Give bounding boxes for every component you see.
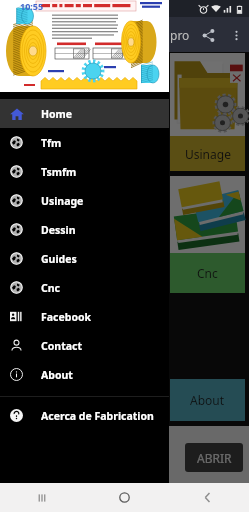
button[interactable]: Tsmfm (0, 157, 169, 186)
button[interactable]: More options (223, 22, 249, 48)
button[interactable]: Home (83, 483, 166, 512)
button[interactable]: Share (193, 20, 223, 50)
button[interactable]: Tfm (0, 128, 169, 157)
button[interactable]: Dessin (0, 215, 169, 244)
staticText: About (190, 392, 225, 408)
staticText: Acerca de Fabrication (41, 409, 154, 423)
staticText: Cnc (41, 281, 60, 295)
staticText: Tsmfm (41, 165, 77, 179)
staticText: Usinage (41, 194, 84, 208)
button[interactable]: Home (0, 99, 169, 128)
staticText: 10:55 (20, 0, 44, 12)
button[interactable]: Acerca de Fabrication (0, 401, 169, 430)
button[interactable]: Cnc (170, 176, 245, 293)
button[interactable]: Guides (0, 244, 169, 273)
button[interactable]: Back (166, 483, 249, 512)
button[interactable]: Facebook (0, 302, 169, 331)
button[interactable]: Usinage (0, 186, 169, 215)
staticText: About (41, 368, 73, 382)
button[interactable]: Contact (0, 331, 169, 360)
button[interactable]: ABRIR (185, 443, 243, 472)
staticText: Contact (41, 339, 82, 353)
staticText: Guides (41, 252, 77, 266)
staticText: Home (41, 107, 73, 121)
staticText: Dessin (41, 223, 76, 237)
staticText: Tfm (41, 136, 62, 150)
button[interactable]: About (0, 360, 169, 389)
staticText: Facebook (41, 310, 92, 324)
staticText: Cnc (197, 265, 218, 281)
button[interactable]: Usinage (170, 53, 245, 171)
staticText: Usinage (185, 146, 231, 162)
staticText: pro (170, 27, 190, 43)
button[interactable]: Recent apps (0, 483, 83, 512)
button[interactable]: Cnc (0, 273, 169, 302)
button[interactable]: About (170, 379, 245, 421)
staticText: ABRIR (197, 450, 232, 466)
